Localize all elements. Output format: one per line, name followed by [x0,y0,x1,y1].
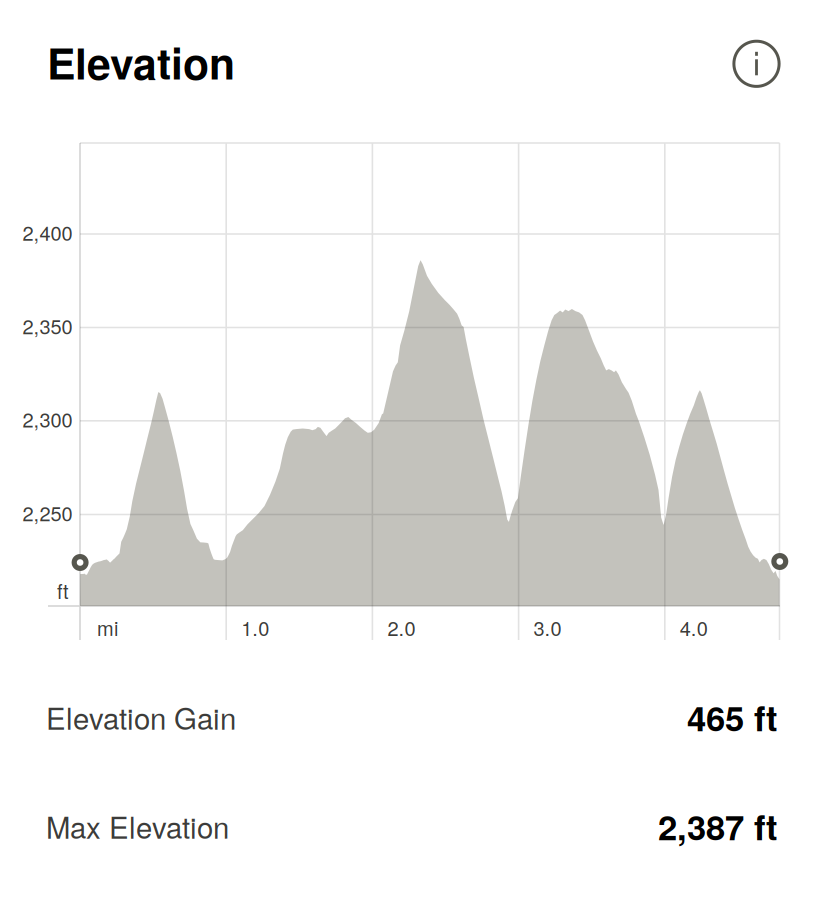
staticText: 2,350 [22,311,72,340]
staticText: 1.0 [241,613,269,642]
staticText: ft [57,576,69,605]
staticText: 3.0 [534,613,562,642]
button[interactable]: Information [723,31,789,97]
staticText: 2,387 ft [658,801,778,851]
staticText: 2,300 [22,404,72,433]
staticText: 2,400 [22,218,72,246]
staticText: 4.0 [680,613,708,642]
staticText: 2.0 [387,613,415,642]
staticText: Max Elevation [46,805,229,847]
staticText: 465 ft [687,692,778,742]
staticText: Elevation Gain [46,696,236,738]
staticText: Elevation [47,31,235,93]
staticText: mi [97,613,118,642]
staticText: 2,250 [22,498,72,527]
